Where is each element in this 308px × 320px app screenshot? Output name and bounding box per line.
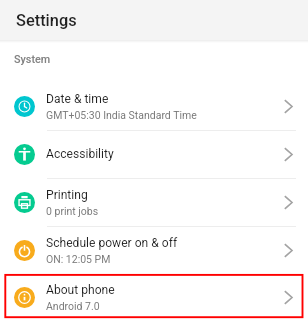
other: Open Accessibility bbox=[281, 147, 297, 163]
other: Open Schedule power on & off bbox=[281, 243, 297, 259]
staticText: Accessibility bbox=[46, 147, 114, 161]
button[interactable]: Schedule power on & off bbox=[0, 227, 308, 274]
staticText: Settings bbox=[16, 11, 77, 30]
other: Open About phone bbox=[281, 290, 297, 306]
staticText: GMT+05:30 India Standard Time bbox=[46, 109, 197, 121]
button[interactable]: Accessibility bbox=[0, 131, 308, 178]
button[interactable]: About phone bbox=[0, 275, 308, 320]
button[interactable]: Printing bbox=[0, 179, 308, 226]
staticText: Printing bbox=[46, 188, 88, 202]
staticText: Schedule power on & off bbox=[46, 236, 178, 250]
staticText: System bbox=[14, 53, 51, 66]
staticText: 0 print jobs bbox=[46, 205, 99, 217]
button[interactable]: Date & time bbox=[0, 83, 308, 130]
other: Open Date & time bbox=[281, 99, 297, 115]
staticText: Android 7.0 bbox=[46, 300, 100, 312]
staticText: ON: 12:05 PM bbox=[46, 253, 111, 265]
staticText: Date & time bbox=[46, 92, 109, 106]
staticText: About phone bbox=[46, 283, 115, 297]
other: Open Printing bbox=[281, 195, 297, 211]
